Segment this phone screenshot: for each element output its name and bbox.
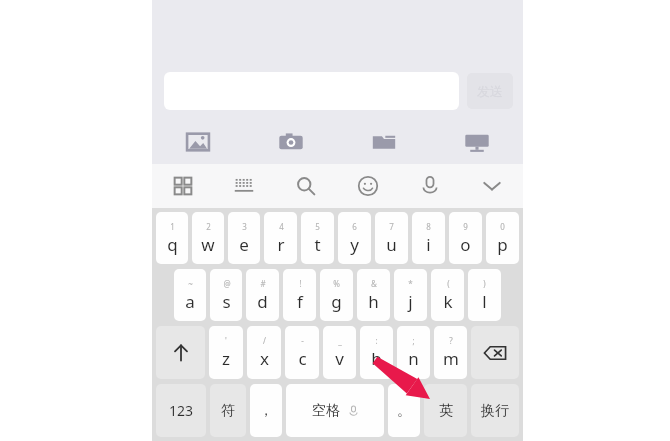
staticText: d bbox=[257, 290, 268, 313]
staticText: q bbox=[167, 233, 178, 256]
staticText: u bbox=[386, 233, 397, 256]
staticText: : bbox=[375, 335, 378, 346]
staticText: ' bbox=[225, 335, 227, 346]
button[interactable]: Photo bbox=[152, 120, 244, 164]
staticText: 8 bbox=[426, 221, 431, 232]
staticText: 7 bbox=[389, 221, 394, 232]
staticText: 9 bbox=[463, 221, 468, 232]
staticText: f bbox=[297, 290, 303, 313]
button[interactable]: ( bbox=[431, 269, 464, 321]
button[interactable]: Collapse bbox=[461, 164, 523, 208]
button[interactable]: ; bbox=[397, 326, 430, 379]
staticText: v bbox=[335, 347, 344, 370]
staticText: n bbox=[408, 347, 419, 370]
staticText: t bbox=[314, 233, 321, 256]
button[interactable]: ) bbox=[468, 269, 501, 321]
staticText: ， bbox=[259, 402, 273, 420]
staticText: z bbox=[222, 347, 230, 370]
button[interactable]: 1 bbox=[156, 212, 188, 264]
button[interactable]: * bbox=[394, 269, 427, 321]
button[interactable]: 英 bbox=[424, 384, 467, 437]
button[interactable]: Search bbox=[275, 164, 337, 208]
button[interactable]: _ bbox=[323, 326, 356, 379]
staticText: a bbox=[185, 290, 195, 313]
button[interactable]: & bbox=[357, 269, 390, 321]
staticText: k bbox=[443, 290, 453, 313]
button[interactable]: 7 bbox=[375, 212, 408, 264]
button[interactable]: Keyboard bbox=[213, 164, 275, 208]
staticText: 符 bbox=[221, 402, 235, 420]
staticText: 5 bbox=[315, 221, 320, 232]
staticText: o bbox=[460, 233, 471, 256]
staticText: x bbox=[260, 347, 269, 370]
button[interactable]: 2 bbox=[192, 212, 224, 264]
staticText: s bbox=[222, 290, 231, 313]
staticText: ) bbox=[483, 278, 486, 289]
button[interactable]: 9 bbox=[449, 212, 482, 264]
button[interactable]: Voice bbox=[399, 164, 461, 208]
staticText: 3 bbox=[242, 221, 247, 232]
staticText: * bbox=[408, 278, 413, 289]
button[interactable]: 3 bbox=[228, 212, 260, 264]
staticText: @ bbox=[223, 278, 231, 289]
staticText: b bbox=[371, 347, 382, 370]
staticText: r bbox=[277, 233, 285, 256]
staticText: 6 bbox=[352, 221, 357, 232]
staticText: _ bbox=[338, 335, 342, 346]
staticText: p bbox=[497, 233, 508, 256]
button[interactable]: : bbox=[360, 326, 393, 379]
button[interactable]: ， bbox=[250, 384, 282, 437]
staticText: 2 bbox=[206, 221, 211, 232]
staticText: i bbox=[426, 233, 431, 256]
button[interactable]: - bbox=[285, 326, 319, 379]
button[interactable]: / bbox=[247, 326, 281, 379]
button[interactable]: 换行 bbox=[471, 384, 519, 437]
button[interactable]: 8 bbox=[412, 212, 445, 264]
staticText: w bbox=[201, 233, 215, 256]
staticText: ~ bbox=[188, 278, 193, 289]
button[interactable]: ~ bbox=[174, 269, 206, 321]
staticText: ! bbox=[299, 278, 302, 289]
button[interactable]: % bbox=[320, 269, 353, 321]
button[interactable]: Shift bbox=[156, 326, 205, 379]
button[interactable]: Emoji bbox=[337, 164, 399, 208]
staticText: % bbox=[333, 278, 340, 289]
staticText: ( bbox=[447, 278, 450, 289]
button[interactable]: 。 bbox=[388, 384, 420, 437]
button[interactable]: 4 bbox=[264, 212, 297, 264]
staticText: 发送 bbox=[477, 83, 503, 99]
button[interactable]: # bbox=[246, 269, 279, 321]
staticText: y bbox=[350, 233, 359, 256]
button[interactable]: ? bbox=[434, 326, 467, 379]
staticText: m bbox=[443, 347, 459, 370]
staticText: ? bbox=[449, 335, 453, 346]
staticText: c bbox=[298, 347, 307, 370]
staticText: 1 bbox=[170, 221, 175, 232]
staticText: & bbox=[371, 278, 377, 289]
button[interactable]: 6 bbox=[338, 212, 371, 264]
button[interactable]: Camera bbox=[244, 120, 337, 164]
staticText: h bbox=[368, 290, 379, 313]
button[interactable]: Backspace bbox=[471, 326, 519, 379]
button[interactable]: Files bbox=[337, 120, 430, 164]
staticText: g bbox=[331, 290, 342, 313]
button[interactable]: Screen bbox=[430, 120, 523, 164]
button[interactable]: 空格 bbox=[286, 384, 384, 437]
staticText: ; bbox=[412, 335, 415, 346]
staticText: j bbox=[408, 290, 413, 313]
button[interactable]: ! bbox=[283, 269, 316, 321]
staticText: 123 bbox=[169, 401, 194, 420]
button[interactable]: Apps bbox=[152, 164, 213, 208]
button[interactable]: 符 bbox=[210, 384, 246, 437]
button[interactable]: @ bbox=[210, 269, 242, 321]
staticText: 英 bbox=[439, 402, 453, 420]
button[interactable]: 5 bbox=[301, 212, 334, 264]
staticText: - bbox=[301, 335, 304, 346]
button[interactable]: 0 bbox=[486, 212, 519, 264]
staticText: 空格 bbox=[312, 402, 340, 420]
staticText: 0 bbox=[500, 221, 505, 232]
button[interactable]: ' bbox=[209, 326, 243, 379]
button[interactable]: 123 bbox=[156, 384, 206, 437]
